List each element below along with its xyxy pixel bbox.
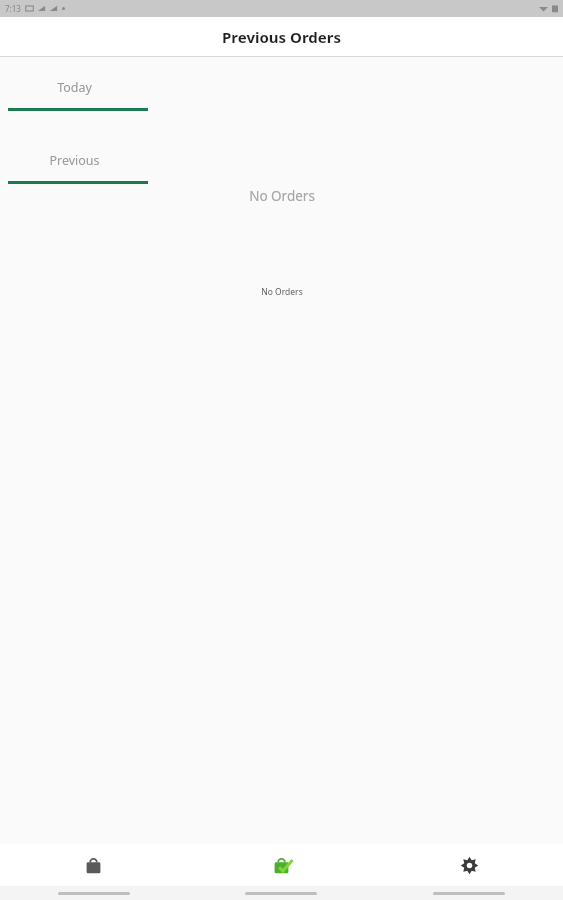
staticText: Today: [57, 79, 92, 96]
button[interactable]: Settings: [375, 844, 563, 886]
button[interactable]: Previous: [0, 152, 148, 184]
staticText: No Orders: [249, 187, 315, 205]
button[interactable]: Previous Orders: [187, 844, 375, 886]
staticText: No Orders: [261, 286, 303, 298]
staticText: Previous Orders: [222, 27, 341, 47]
button[interactable]: Orders: [0, 844, 187, 886]
staticText: Previous: [49, 152, 100, 169]
staticText: 7:13: [5, 3, 21, 14]
button[interactable]: Today: [0, 79, 148, 111]
